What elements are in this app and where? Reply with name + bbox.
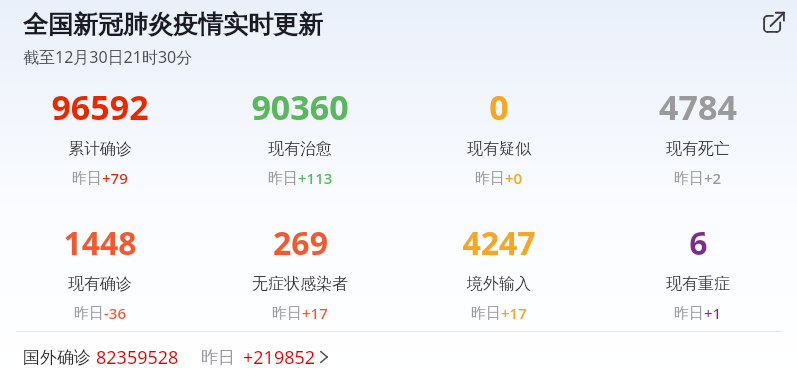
button[interactable]: 1448	[63, 221, 137, 323]
staticText: +2	[704, 168, 722, 188]
staticText: +79	[102, 168, 128, 188]
staticText: -36	[104, 303, 126, 323]
staticText: 昨日	[674, 169, 704, 188]
staticText: 昨日	[74, 304, 104, 323]
staticText: +17	[302, 303, 328, 323]
staticText: +1	[704, 303, 722, 323]
staticText: 6	[689, 221, 708, 265]
staticText: 截至12月30日21时30分	[23, 46, 193, 68]
staticText: +219852	[243, 345, 316, 370]
staticText: 累计确诊	[68, 139, 132, 159]
button[interactable]: 90360	[251, 84, 349, 188]
staticText: 全国新冠肺炎疫情实时更新	[23, 9, 323, 40]
staticText: 昨日	[674, 304, 704, 323]
staticText: 269	[273, 221, 328, 265]
staticText: 无症状感染者	[252, 274, 348, 294]
button[interactable]: 6	[666, 221, 730, 323]
button[interactable]: 269	[252, 221, 348, 323]
button[interactable]: 国外确诊	[0, 332, 797, 382]
staticText: 昨日	[268, 169, 298, 188]
staticText: 昨日	[272, 304, 302, 323]
button[interactable]: 0	[467, 84, 531, 188]
staticText: 1448	[63, 221, 137, 265]
staticText: 国外确诊	[23, 347, 91, 368]
staticText: 昨日	[471, 304, 501, 323]
staticText: 昨日	[72, 169, 102, 188]
staticText: +0	[505, 168, 523, 188]
button[interactable]: 4784	[659, 84, 737, 188]
button[interactable]: 4247	[462, 221, 536, 323]
staticText: 现有疑似	[467, 139, 531, 159]
staticText: 0	[489, 84, 509, 130]
staticText: 96592	[51, 84, 149, 130]
staticText: 90360	[251, 84, 349, 130]
staticText: 昨日	[201, 347, 235, 368]
staticText: 82359528	[96, 345, 179, 370]
staticText: 现有确诊	[68, 274, 132, 294]
staticText: 现有重症	[666, 274, 730, 294]
button[interactable]: 96592	[51, 84, 149, 188]
button[interactable]: Open in new window	[757, 5, 791, 39]
staticText: 现有治愈	[268, 139, 332, 159]
staticText: 昨日	[475, 169, 505, 188]
staticText: 境外输入	[467, 274, 531, 294]
staticText: +17	[501, 303, 527, 323]
staticText: +113	[298, 168, 333, 188]
staticText: 4784	[659, 84, 737, 130]
staticText: 4247	[462, 221, 536, 265]
staticText: 现有死亡	[666, 139, 730, 159]
